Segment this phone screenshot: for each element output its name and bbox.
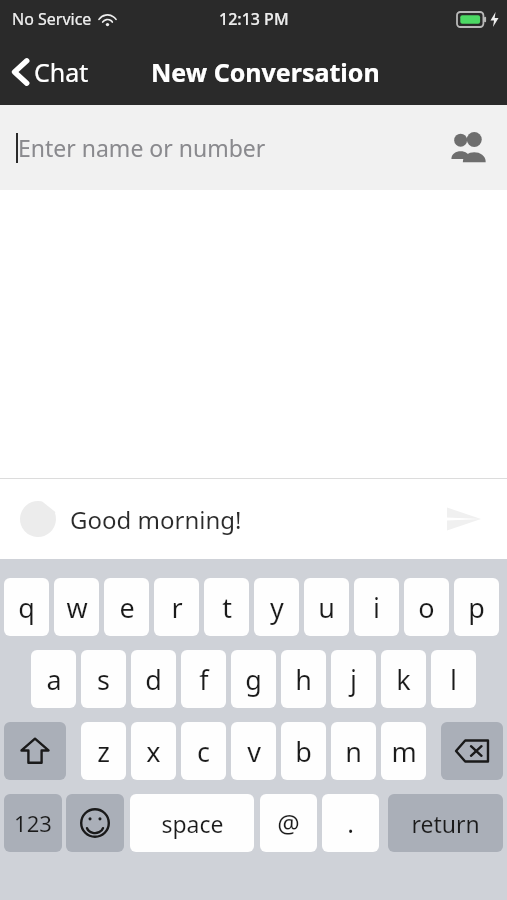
staticText: j	[350, 661, 357, 698]
button[interactable]: t	[204, 578, 249, 636]
button[interactable]: h	[281, 650, 326, 708]
staticText: @	[277, 806, 300, 840]
button[interactable]: n	[331, 722, 376, 780]
staticText: l	[450, 661, 457, 698]
button[interactable]: v	[231, 722, 276, 780]
button[interactable]: Backspace	[441, 722, 503, 780]
staticText: 12:13 PM	[219, 8, 289, 30]
staticText: k	[396, 661, 411, 698]
button[interactable]: e	[104, 578, 149, 636]
staticText: c	[197, 733, 210, 770]
button[interactable]: s	[81, 650, 126, 708]
button[interactable]: m	[381, 722, 426, 780]
button[interactable]: c	[181, 722, 226, 780]
button[interactable]: 123	[4, 794, 62, 852]
staticText: space	[161, 808, 224, 839]
button[interactable]: y	[254, 578, 299, 636]
button[interactable]: return	[388, 794, 503, 852]
staticText: n	[345, 733, 362, 770]
staticText: t	[222, 589, 232, 626]
staticText: i	[373, 589, 380, 626]
button[interactable]: q	[4, 578, 49, 636]
button[interactable]: b	[281, 722, 326, 780]
staticText: r	[171, 589, 183, 626]
staticText: 123	[14, 808, 52, 838]
button[interactable]: u	[304, 578, 349, 636]
button[interactable]: .	[322, 794, 379, 852]
button[interactable]: f	[181, 650, 226, 708]
button[interactable]: Chat	[0, 49, 99, 95]
staticText: h	[295, 661, 312, 698]
staticText: s	[97, 661, 110, 698]
staticText: m	[391, 733, 417, 770]
button[interactable]: Enter name or number	[0, 105, 507, 190]
staticText: v	[247, 733, 261, 770]
button[interactable]: g	[231, 650, 276, 708]
button[interactable]: r	[154, 578, 199, 636]
staticText: e	[119, 589, 135, 626]
button[interactable]: d	[131, 650, 176, 708]
staticText: No Service	[12, 8, 92, 30]
staticText: Enter name or number	[18, 132, 266, 163]
staticText: Chat	[34, 55, 89, 89]
staticText: .	[347, 806, 354, 840]
staticText: w	[66, 589, 88, 626]
button[interactable]: l	[431, 650, 476, 708]
button[interactable]: z	[81, 722, 126, 780]
button[interactable]: k	[381, 650, 426, 708]
button[interactable]: Shift	[4, 722, 66, 780]
staticText: q	[18, 589, 35, 626]
staticText: x	[146, 733, 161, 770]
button[interactable]: space	[130, 794, 254, 852]
staticText: z	[97, 733, 110, 770]
staticText: u	[318, 589, 335, 626]
staticText: o	[418, 589, 435, 626]
staticText: d	[145, 661, 162, 698]
staticText: New Conversation	[151, 55, 380, 89]
staticText: g	[245, 661, 262, 698]
button[interactable]: Emoji	[66, 794, 124, 852]
staticText: y	[270, 589, 284, 626]
button[interactable]: i	[354, 578, 399, 636]
button[interactable]: Send	[441, 500, 487, 538]
button[interactable]: Choose contact	[447, 131, 507, 165]
button[interactable]: a	[31, 650, 76, 708]
staticText: a	[46, 661, 62, 698]
staticText: return	[411, 808, 480, 839]
button[interactable]: p	[454, 578, 499, 636]
button[interactable]: j	[331, 650, 376, 708]
staticText: b	[295, 733, 312, 770]
staticText: p	[468, 589, 485, 626]
button[interactable]: w	[54, 578, 99, 636]
button[interactable]: @	[260, 794, 317, 852]
staticText: Good morning!	[70, 503, 242, 536]
button[interactable]: o	[404, 578, 449, 636]
button[interactable]: x	[131, 722, 176, 780]
staticText: f	[199, 661, 209, 698]
